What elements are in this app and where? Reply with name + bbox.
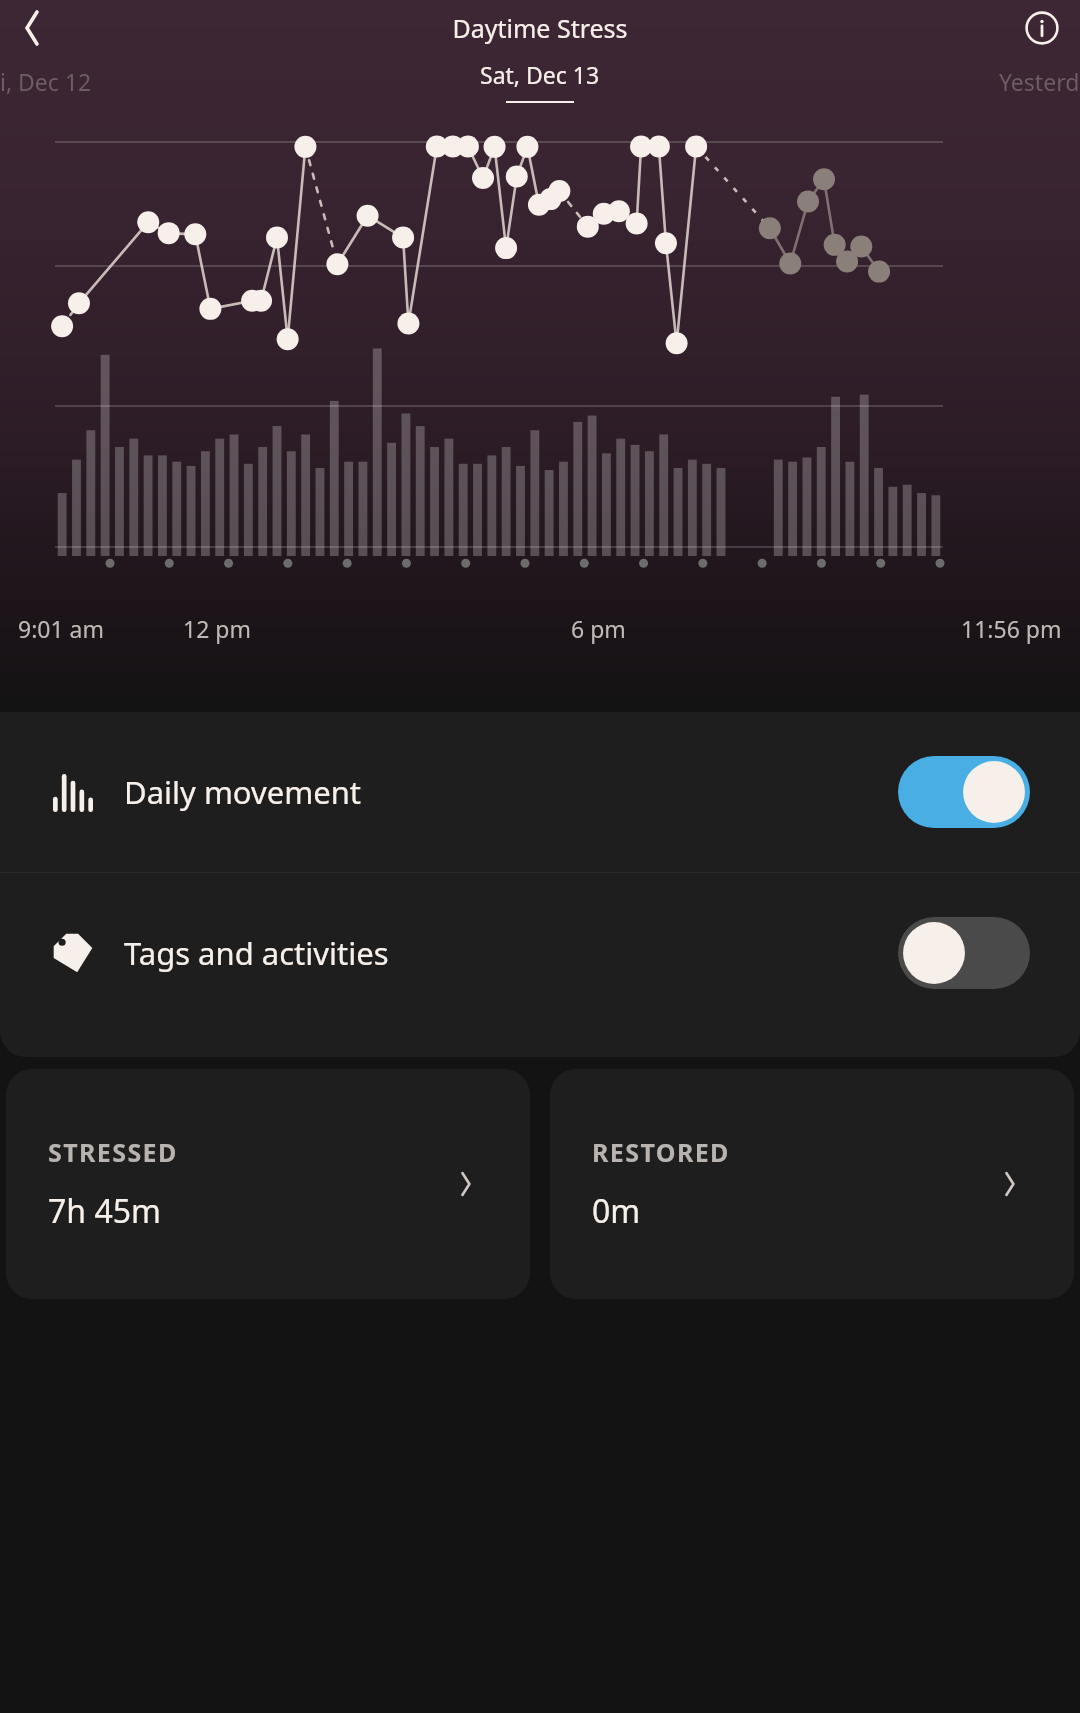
staticText: RESTORED: [592, 1135, 730, 1169]
staticText: 7h 45m: [48, 1189, 161, 1233]
staticText: 12 pm: [183, 613, 251, 644]
button[interactable]: Back: [6, 2, 58, 54]
staticText: Sat, Dec 13: [480, 59, 600, 90]
staticText: 6 pm: [571, 613, 626, 644]
button[interactable]: Sat, Dec 13: [480, 59, 600, 103]
staticText: 11:56 pm: [961, 613, 1062, 644]
button[interactable]: STRESSED: [6, 1069, 530, 1299]
button[interactable]: Yesterd: [999, 66, 1080, 97]
staticText: 9:01 am: [18, 613, 105, 644]
staticText: Daily movement: [124, 771, 362, 813]
staticText: STRESSED: [48, 1135, 178, 1169]
button[interactable]: Daily movement: [0, 712, 1080, 872]
button[interactable]: RESTORED: [550, 1069, 1074, 1299]
staticText: Daytime Stress: [452, 11, 628, 45]
staticText: Tags and activities: [124, 932, 389, 974]
staticText: 0m: [592, 1189, 641, 1233]
button[interactable]: i, Dec 12: [0, 66, 92, 97]
button[interactable]: Info: [1016, 2, 1068, 54]
button[interactable]: Tags and activities: [0, 873, 1080, 1033]
